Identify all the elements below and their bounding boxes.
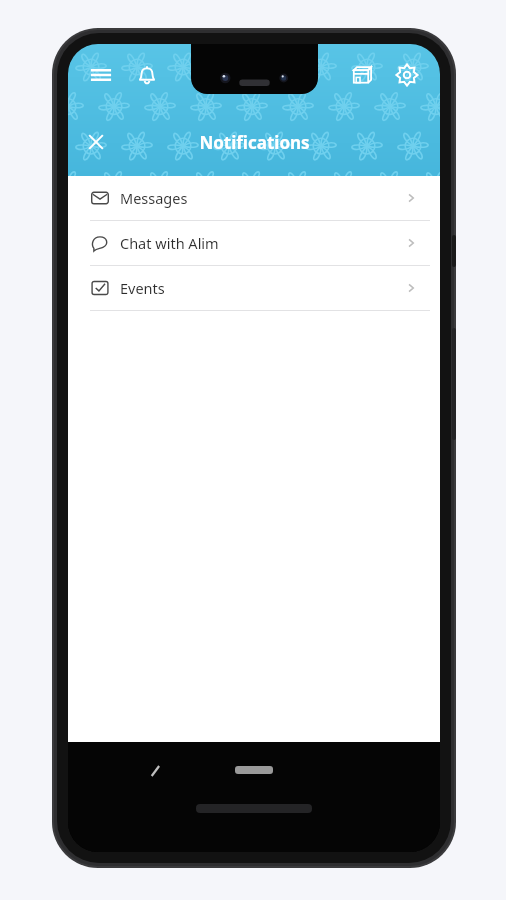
button[interactable]: Close — [76, 122, 116, 162]
button[interactable]: Chat with Alim — [68, 221, 440, 265]
button[interactable]: Events — [68, 266, 440, 310]
button[interactable]: Menu — [78, 52, 124, 98]
staticText: Notifications — [199, 131, 310, 154]
button[interactable]: Qibla — [338, 52, 384, 98]
staticText: Chat with Alim — [120, 233, 404, 253]
button[interactable]: Messages — [68, 176, 440, 220]
staticText: Events — [120, 278, 404, 298]
button[interactable]: Notifications — [124, 52, 170, 98]
staticText: Messages — [120, 188, 404, 208]
button[interactable]: Settings — [384, 52, 430, 98]
